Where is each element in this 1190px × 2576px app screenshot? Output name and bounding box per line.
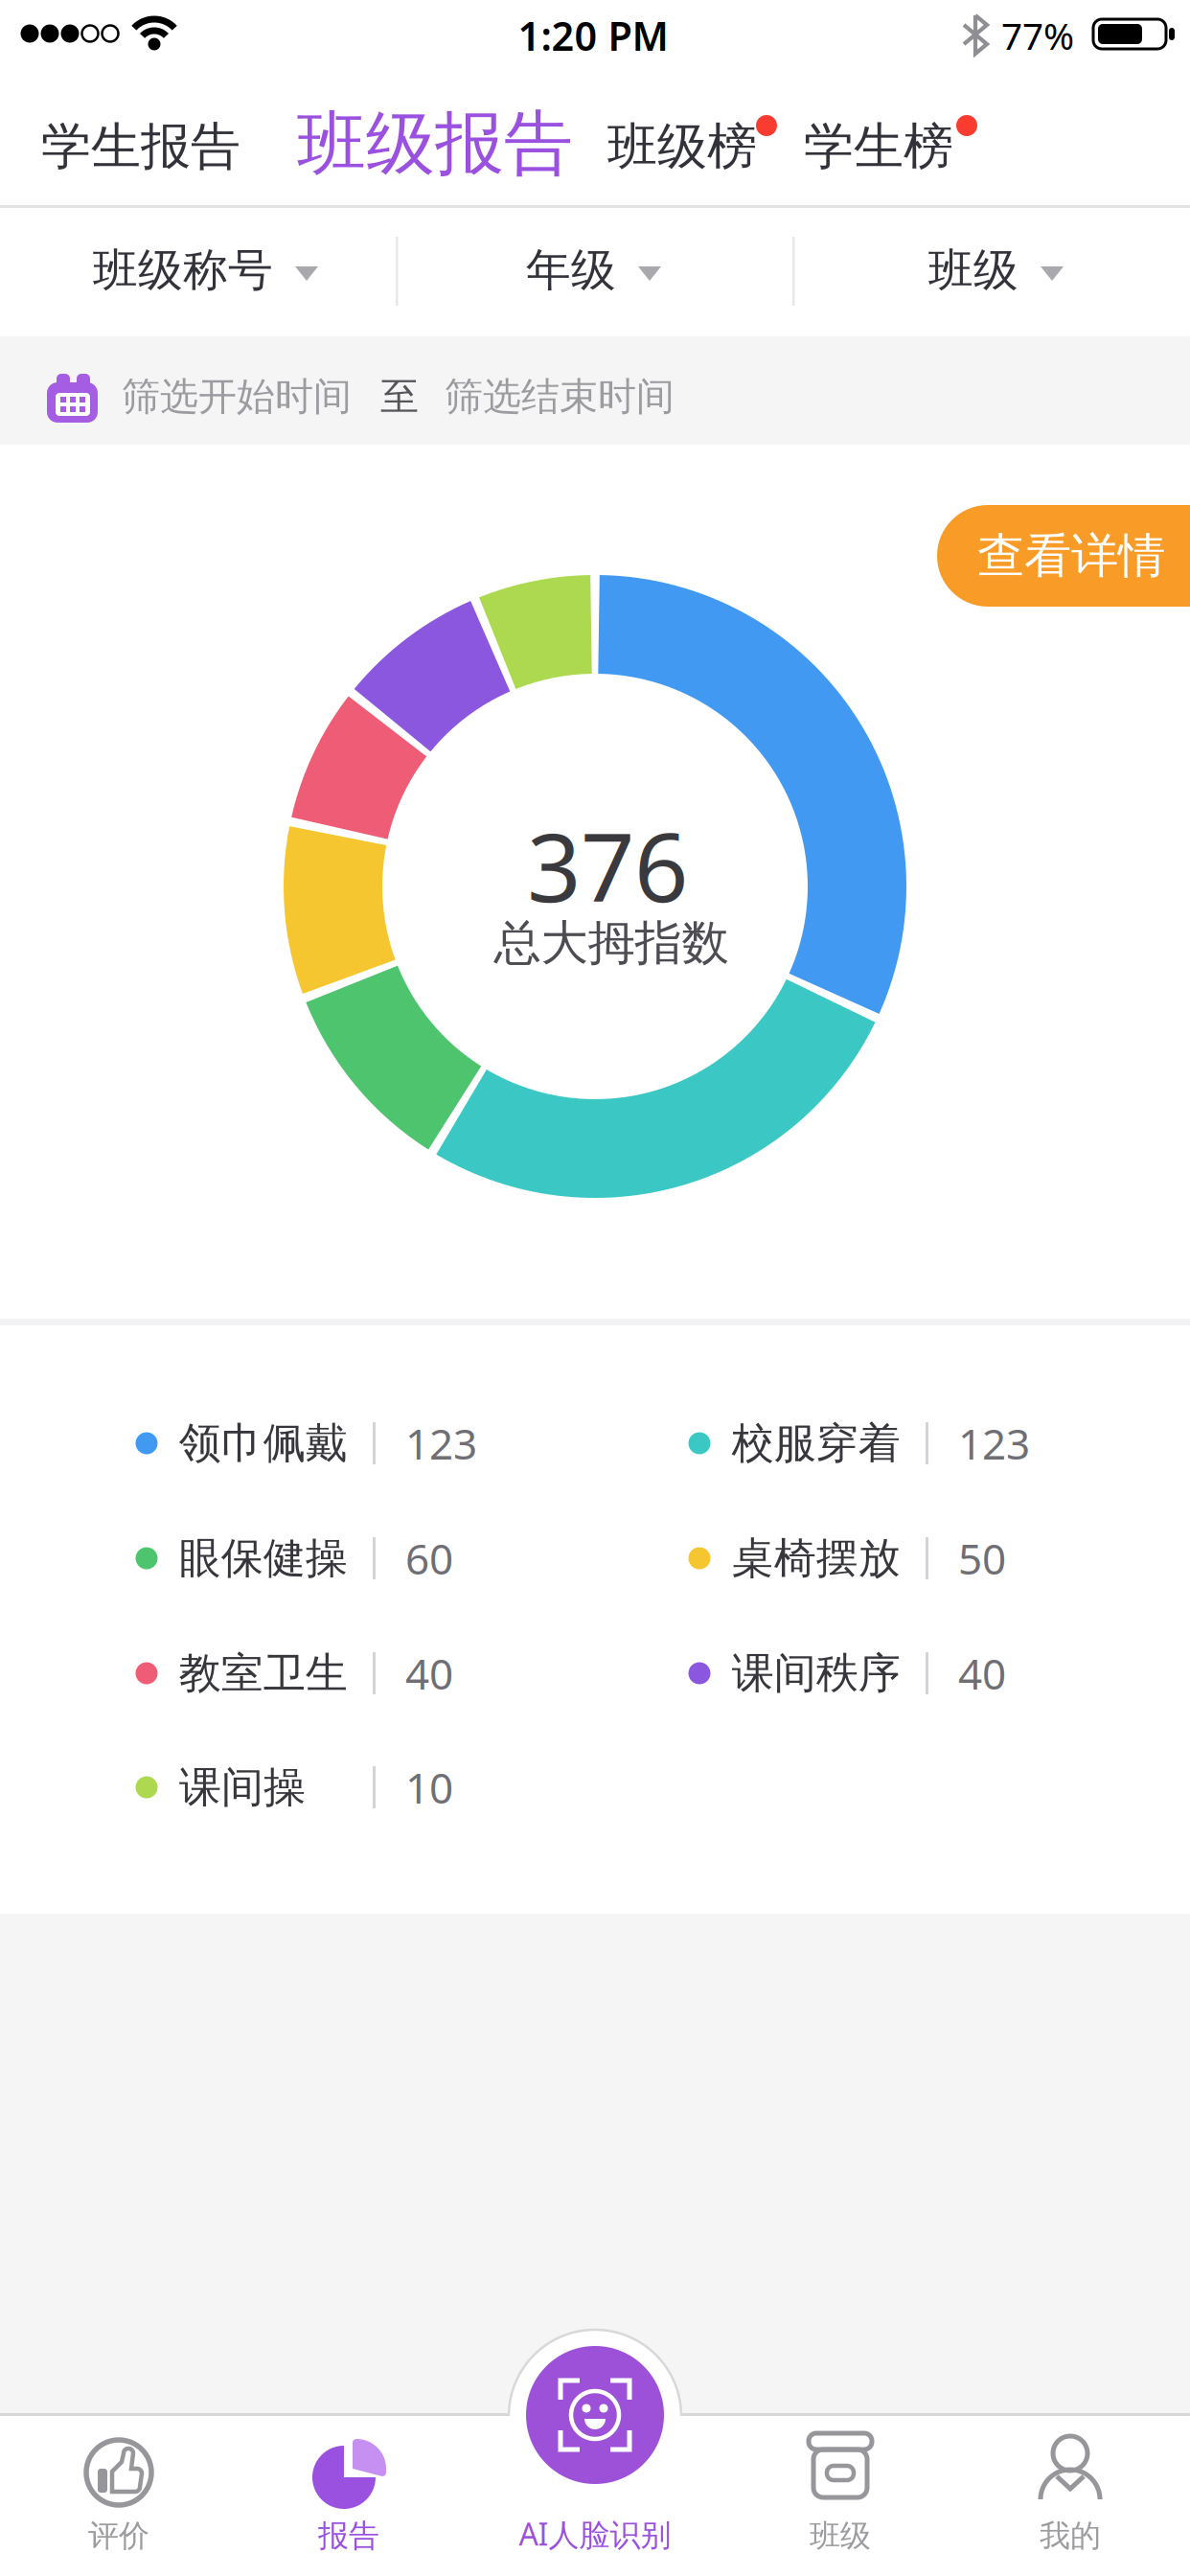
staticText: AI人脸识别 — [519, 2513, 671, 2554]
staticText: 筛选结束时间 — [445, 373, 675, 420]
staticText: 123 — [958, 1415, 1030, 1471]
button[interactable]: 班级 — [928, 243, 1064, 298]
staticText: 班级 — [928, 243, 1018, 298]
staticText: 年级 — [526, 243, 616, 298]
staticText: 课间秩序 — [732, 1647, 900, 1699]
button[interactable]: 评价 — [0, 2415, 238, 2576]
staticText: 60 — [405, 1530, 453, 1586]
staticText: 桌椅摆放 — [732, 1532, 900, 1584]
button[interactable]: 班级榜 — [607, 116, 784, 177]
button[interactable]: 班级称号 — [93, 243, 319, 298]
button[interactable]: 学生榜 — [804, 116, 980, 177]
button[interactable]: 班级报告 — [297, 101, 573, 186]
staticText: 课间操 — [179, 1761, 306, 1813]
staticText: 教室卫生 — [179, 1647, 348, 1699]
staticText: 我的 — [1040, 2517, 1101, 2555]
button[interactable]: 筛选开始时间 — [0, 336, 1190, 445]
button[interactable]: 查看详情 — [937, 505, 1190, 607]
staticText: 学生榜 — [804, 116, 953, 177]
staticText: 查看详情 — [977, 527, 1165, 585]
button[interactable]: 年级 — [526, 243, 662, 298]
staticText: 50 — [958, 1530, 1006, 1586]
button[interactable]: 班级 — [721, 2415, 959, 2576]
button[interactable]: 学生报告 — [41, 116, 240, 177]
staticText: 班级报告 — [297, 101, 573, 186]
staticText: 领巾佩戴 — [179, 1417, 348, 1469]
staticText: 1:20 PM — [518, 9, 668, 62]
staticText: 123 — [405, 1415, 477, 1471]
button[interactable]: AI人脸识别 — [476, 2325, 714, 2576]
button[interactable]: 我的 — [951, 2415, 1189, 2576]
staticText: 10 — [405, 1759, 453, 1815]
staticText: 校服穿着 — [732, 1417, 900, 1469]
staticText: 报告 — [318, 2517, 379, 2555]
staticText: 77% — [1001, 11, 1074, 60]
staticText: 班级榜 — [607, 116, 757, 177]
staticText: 40 — [405, 1645, 453, 1701]
staticText: 班级 — [810, 2517, 871, 2555]
staticText: 40 — [958, 1645, 1006, 1701]
staticText: 376 — [527, 803, 688, 928]
staticText: 评价 — [88, 2517, 149, 2555]
staticText: 总大拇指数 — [494, 914, 729, 972]
staticText: 班级称号 — [93, 243, 273, 298]
staticText: 筛选开始时间 — [122, 373, 352, 420]
staticText: 至 — [380, 373, 419, 420]
staticText: 学生报告 — [41, 116, 240, 177]
staticText: 眼保健操 — [179, 1532, 348, 1584]
button[interactable]: 报告 — [230, 2415, 468, 2576]
